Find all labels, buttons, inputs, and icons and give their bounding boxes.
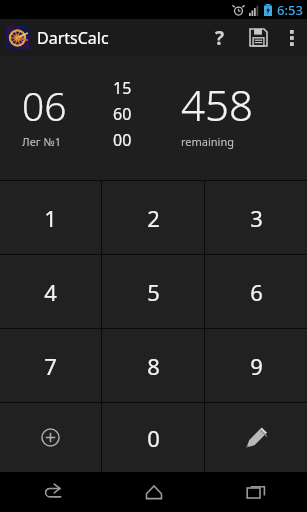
- button[interactable]: 2: [102, 181, 204, 254]
- staticText: 1: [44, 203, 57, 233]
- staticText: 00: [113, 129, 132, 151]
- button[interactable]: 6: [205, 255, 307, 328]
- staticText: 4: [44, 277, 57, 307]
- staticText: 5: [147, 277, 160, 307]
- button[interactable]: Help: [201, 19, 239, 56]
- staticText: 2: [147, 203, 160, 233]
- staticText: 8: [147, 351, 160, 381]
- button[interactable]: 9: [205, 329, 307, 402]
- staticText: 6: [250, 277, 263, 307]
- staticText: 60: [113, 103, 132, 125]
- staticText: remaining: [181, 134, 235, 149]
- staticText: 06: [22, 79, 67, 132]
- button[interactable]: Recent apps: [205, 472, 307, 512]
- button[interactable]: 4: [0, 255, 101, 328]
- button[interactable]: 7: [0, 329, 101, 402]
- button[interactable]: More options: [277, 19, 307, 56]
- staticText: 15: [113, 77, 132, 99]
- button[interactable]: Edit: [205, 403, 307, 472]
- staticText: 3: [250, 203, 263, 233]
- button[interactable]: Add: [0, 403, 101, 472]
- button[interactable]: Save: [239, 19, 277, 56]
- button[interactable]: 1: [0, 181, 101, 254]
- button[interactable]: 3: [205, 181, 307, 254]
- staticText: 0: [147, 423, 160, 453]
- button[interactable]: 5: [102, 255, 204, 328]
- button[interactable]: Back: [0, 472, 103, 512]
- staticText: DartsCalc: [37, 27, 109, 49]
- button[interactable]: Home: [103, 472, 205, 512]
- button[interactable]: 8: [102, 329, 204, 402]
- staticText: ?: [215, 25, 225, 51]
- button[interactable]: 0: [102, 403, 204, 472]
- staticText: Лег №1: [22, 134, 61, 149]
- staticText: 9: [250, 351, 263, 381]
- staticText: 458: [181, 76, 253, 133]
- staticText: 6:53: [277, 1, 303, 19]
- staticText: 7: [44, 351, 57, 381]
